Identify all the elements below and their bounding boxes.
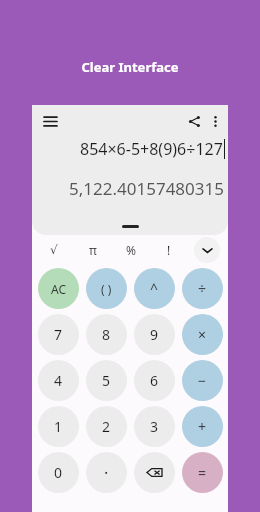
button[interactable]: 2 (86, 406, 127, 447)
button[interactable]: Share (183, 110, 205, 132)
staticText: 5,122.40157480315 (69, 177, 224, 200)
staticText: × (198, 325, 207, 344)
button[interactable]: 0 (38, 452, 79, 493)
button[interactable]: 4 (38, 360, 79, 401)
button[interactable]: π (73, 235, 112, 265)
staticText: 1 (54, 417, 63, 436)
staticText: 0 (54, 463, 63, 482)
button[interactable]: Expand history (122, 225, 139, 228)
button[interactable]: · (86, 452, 127, 493)
staticText: √ (50, 243, 58, 257)
staticText: 7 (54, 325, 63, 344)
button[interactable]: 6 (134, 360, 175, 401)
button[interactable]: × (182, 314, 223, 355)
staticText: % (126, 242, 136, 258)
staticText: + (198, 417, 207, 436)
button[interactable]: − (182, 360, 223, 401)
staticText: ÷ (198, 279, 207, 298)
button[interactable]: % (112, 235, 150, 265)
button[interactable]: 3 (134, 406, 175, 447)
staticText: π (89, 242, 97, 258)
button[interactable]: 5 (86, 360, 127, 401)
button[interactable]: 8 (86, 314, 127, 355)
staticText: 854×6-5+8(9)6÷127 (80, 138, 223, 160)
button[interactable]: ^ (134, 268, 175, 309)
staticText: 9 (150, 325, 159, 344)
button[interactable]: More options (205, 111, 225, 131)
staticText: ( ) (101, 281, 112, 297)
button[interactable]: Backspace (134, 452, 175, 493)
staticText: 6 (150, 371, 159, 390)
staticText: ! (167, 242, 171, 258)
button[interactable]: ! (150, 235, 188, 265)
staticText: 5 (102, 371, 111, 390)
button[interactable]: + (182, 406, 223, 447)
staticText: Clear Interface (0, 58, 260, 76)
staticText: 8 (102, 325, 111, 344)
staticText: AC (51, 281, 67, 297)
staticText: 2 (102, 417, 111, 436)
button[interactable]: √ (34, 235, 73, 265)
button[interactable]: ( ) (86, 268, 127, 309)
staticText: = (198, 463, 207, 482)
button[interactable]: Show more functions (194, 237, 220, 263)
button[interactable]: AC (38, 268, 79, 309)
staticText: − (198, 371, 207, 390)
button[interactable]: 7 (38, 314, 79, 355)
button[interactable]: = (182, 452, 223, 493)
staticText: ^ (150, 279, 159, 298)
staticText: · (104, 462, 109, 484)
staticText: 4 (54, 371, 63, 390)
button[interactable]: 1 (38, 406, 79, 447)
button[interactable]: 9 (134, 314, 175, 355)
staticText: 3 (150, 417, 159, 436)
button[interactable]: Menu (39, 110, 61, 132)
button[interactable]: ÷ (182, 268, 223, 309)
